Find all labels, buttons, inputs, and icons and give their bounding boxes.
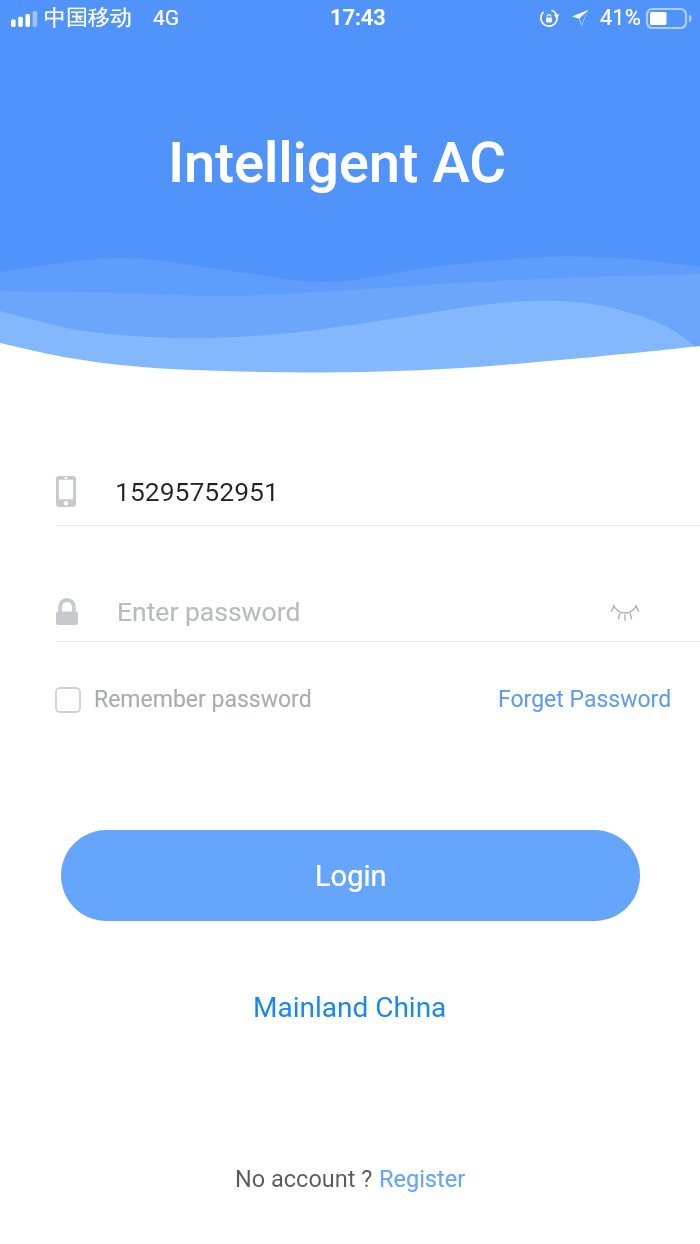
staticText: No account ?	[235, 1165, 379, 1193]
staticText: 中国移动	[44, 4, 132, 32]
staticText: Forget Password	[498, 686, 672, 713]
staticText: 41%	[600, 5, 641, 31]
button[interactable]: Mainland China	[253, 991, 447, 1024]
staticText: Register	[379, 1165, 466, 1193]
staticText: 17:43	[330, 5, 386, 31]
button[interactable]: Show password	[596, 588, 654, 634]
staticText: 15295752951	[115, 476, 279, 507]
staticText: Mainland China	[253, 991, 447, 1024]
staticText: Remember password	[94, 686, 312, 713]
button[interactable]: Forget Password	[498, 686, 672, 713]
button[interactable]: Remember password	[56, 686, 312, 713]
button[interactable]: Register	[379, 1165, 466, 1193]
staticText: 4G	[153, 6, 180, 31]
button[interactable]: Login	[61, 830, 640, 921]
staticText: Enter password	[117, 596, 301, 627]
staticText: Login	[315, 859, 387, 893]
staticText: Intelligent AC	[0, 130, 687, 196]
